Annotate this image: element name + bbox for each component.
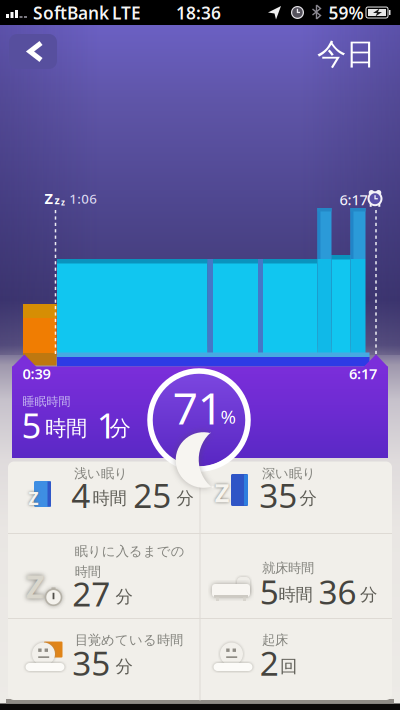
staticText: 時間 (75, 564, 101, 580)
staticText: 6:17 (349, 364, 377, 383)
staticText: 眠りに入るまでの (75, 543, 185, 560)
staticText: 回 (280, 656, 297, 677)
staticText: 36 (318, 569, 356, 614)
staticText: Z (215, 475, 230, 509)
staticText: 27 (72, 571, 110, 616)
staticText: 71 (173, 378, 223, 436)
staticText: 59% (328, 1, 363, 24)
staticText: 時間 (45, 415, 87, 442)
staticText: 18:36 (176, 1, 221, 24)
staticText: 時間 (278, 584, 312, 605)
staticText: Z (28, 487, 38, 510)
staticText: 分 (360, 584, 377, 605)
staticText: 分 (299, 488, 316, 509)
staticText: 分 (176, 488, 193, 509)
staticText: 5 (260, 569, 279, 614)
staticText: 4 (71, 473, 90, 517)
staticText: 今日 (317, 36, 375, 72)
staticText: 25 (133, 473, 171, 517)
staticText: 浅い眠り (74, 465, 128, 482)
staticText: 時間 (92, 488, 126, 509)
staticText: 深い眠り (262, 465, 316, 482)
staticText: 2 (260, 641, 279, 685)
staticText: Z (26, 565, 45, 607)
staticText: 就床時間 (262, 560, 314, 576)
staticText: SoftBank (33, 1, 109, 24)
staticText: Z (45, 188, 53, 208)
staticText: 35 (72, 641, 110, 685)
staticText: z (61, 197, 65, 208)
staticText: 起床 (262, 632, 288, 648)
staticText: 6:17 (339, 190, 367, 209)
staticText: z (54, 193, 59, 207)
staticText: % (220, 404, 236, 429)
staticText: 35 (259, 473, 297, 517)
staticText: 目覚めている時間 (75, 632, 183, 648)
staticText: 分 (115, 656, 132, 677)
staticText: 分 (109, 415, 130, 442)
staticText: 5 (21, 402, 41, 448)
staticText: 1:06 (69, 190, 97, 207)
staticText: 0:39 (23, 364, 51, 383)
staticText: 睡眠時間 (23, 394, 71, 409)
staticText: 1 (97, 402, 117, 448)
staticText: LTE (112, 1, 141, 24)
staticText: 分 (115, 586, 132, 607)
